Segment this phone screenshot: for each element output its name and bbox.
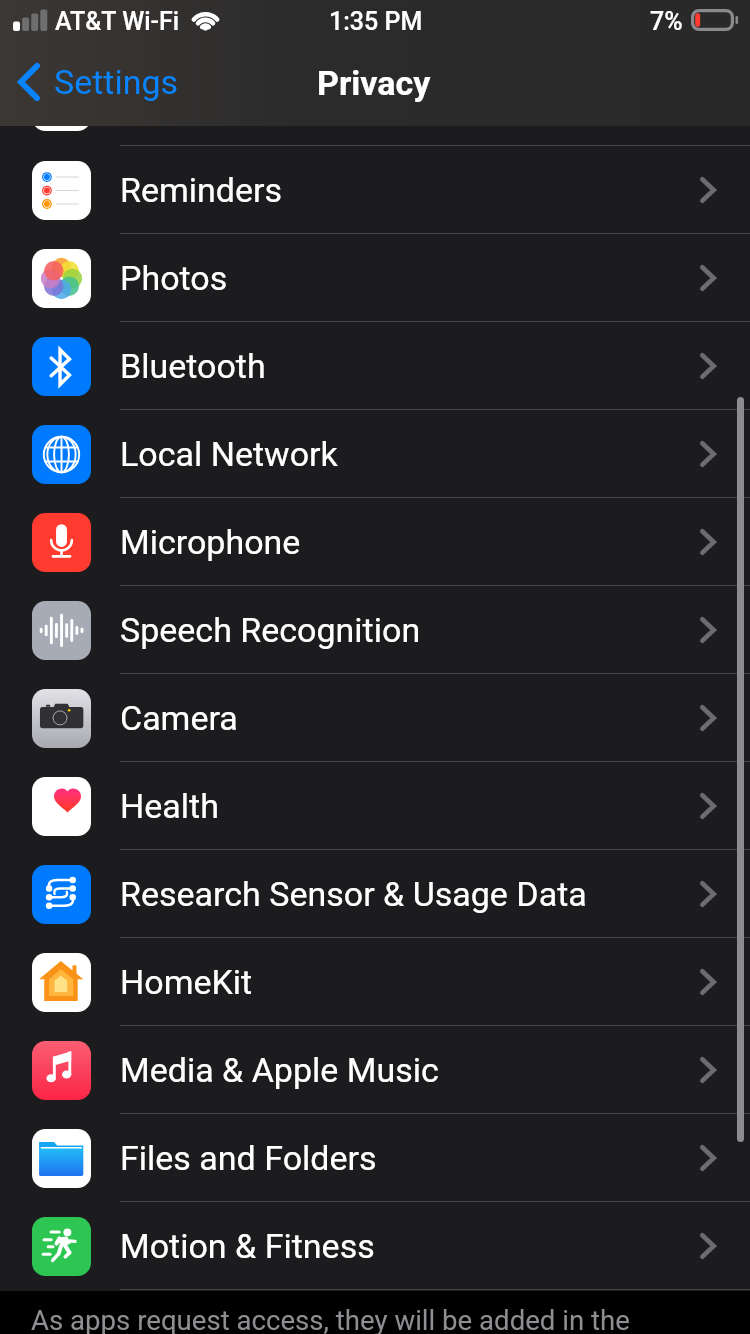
staticText: Files and Folders xyxy=(120,1138,377,1178)
staticText: As apps request access, they will be add… xyxy=(31,1304,630,1334)
button[interactable]: Microphone xyxy=(0,498,750,586)
button[interactable]: Health xyxy=(0,762,750,850)
staticText: Local Network xyxy=(120,434,338,474)
staticText: AT&T Wi-Fi xyxy=(55,7,180,36)
staticText: Microphone xyxy=(120,522,301,562)
staticText: Reminders xyxy=(120,170,283,210)
button[interactable]: Bluetooth xyxy=(0,322,750,410)
button[interactable]: Photos xyxy=(0,234,750,322)
staticText: HomeKit xyxy=(120,962,253,1002)
staticText: Settings xyxy=(54,62,179,102)
button[interactable]: Reminders xyxy=(0,146,750,234)
button[interactable]: Motion & Fitness xyxy=(0,1202,750,1290)
button[interactable]: Camera xyxy=(0,674,750,762)
staticText: Photos xyxy=(120,258,228,298)
button[interactable]: Research Sensor & Usage Data xyxy=(0,850,750,938)
staticText: 1:35 PM xyxy=(329,7,423,36)
staticText: Camera xyxy=(120,698,238,738)
staticText: Privacy xyxy=(317,63,431,103)
button[interactable]: Files and Folders xyxy=(0,1114,750,1202)
staticText: Motion & Fitness xyxy=(120,1226,375,1266)
staticText: Media & Apple Music xyxy=(120,1050,439,1090)
staticText: Bluetooth xyxy=(120,346,266,386)
button[interactable]: Settings xyxy=(10,56,193,108)
staticText: Research Sensor & Usage Data xyxy=(120,874,587,914)
button[interactable]: Media & Apple Music xyxy=(0,1026,750,1114)
staticText: Speech Recognition xyxy=(120,610,421,650)
button[interactable]: Speech Recognition xyxy=(0,586,750,674)
staticText: 7% xyxy=(650,7,683,36)
button[interactable]: Local Network xyxy=(0,410,750,498)
staticText: Health xyxy=(120,786,219,826)
button[interactable]: HomeKit xyxy=(0,938,750,1026)
